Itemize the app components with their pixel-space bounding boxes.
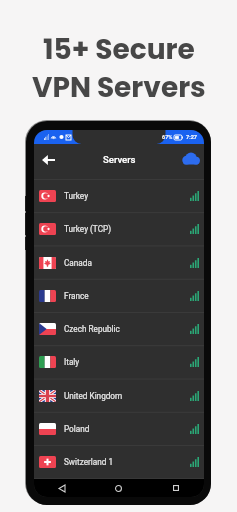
staticText: Czech Republic — [64, 324, 120, 334]
staticText: Turkey — [64, 191, 89, 201]
button[interactable]: Canada — [34, 246, 204, 279]
staticText: 67% — [162, 134, 173, 141]
staticText: Servers — [103, 154, 136, 165]
button[interactable]: Back — [37, 149, 59, 171]
button[interactable]: Back — [34, 479, 90, 497]
button[interactable]: Turkey (TCP) — [34, 212, 204, 245]
staticText: VPN Servers — [32, 68, 206, 107]
staticText: Canada — [64, 258, 92, 268]
staticText: 7:27 — [186, 134, 198, 141]
button[interactable]: Home — [90, 479, 147, 497]
staticText: Turkey (TCP) — [64, 224, 111, 234]
button[interactable]: France — [34, 279, 204, 312]
button[interactable]: Turkey — [34, 179, 204, 212]
button[interactable]: Czech Republic — [34, 312, 204, 345]
staticText: Poland — [64, 424, 90, 434]
button[interactable]: Switzerland 1 — [34, 445, 204, 478]
staticText: Switzerland 1 — [64, 457, 114, 467]
staticText: United Kingdom — [64, 391, 123, 401]
button[interactable]: Italy — [34, 345, 204, 378]
staticText: France — [64, 291, 89, 301]
button[interactable]: United Kingdom — [34, 379, 204, 412]
staticText: Italy — [64, 357, 80, 367]
button[interactable]: Recents — [147, 479, 204, 497]
button[interactable]: Cloud storage — [177, 147, 204, 170]
button[interactable]: Poland — [34, 412, 204, 445]
staticText: 15+ Secure — [43, 30, 195, 69]
